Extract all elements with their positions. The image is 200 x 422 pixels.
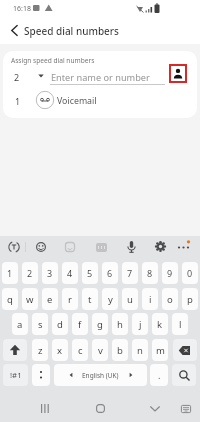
- staticText: 4: [67, 267, 73, 279]
- staticText: Speed dial numbers: [24, 24, 119, 38]
- staticText: .: [158, 369, 161, 381]
- staticText: u: [127, 293, 133, 306]
- button[interactable]: k: [152, 313, 168, 335]
- staticText: Enter name or number: [51, 71, 150, 84]
- staticText: i: [149, 293, 152, 306]
- staticText: 6: [107, 267, 113, 279]
- button[interactable]: !#1: [3, 364, 28, 386]
- button[interactable]: [86, 400, 116, 422]
- staticText: b: [117, 344, 123, 357]
- button[interactable]: a: [12, 313, 28, 335]
- staticText: p: [187, 293, 193, 306]
- staticText: s: [38, 318, 43, 331]
- button[interactable]: t: [82, 288, 98, 310]
- staticText: j: [139, 318, 142, 331]
- staticText: 5: [87, 267, 93, 279]
- staticText: !#1: [10, 370, 22, 381]
- staticText: y: [108, 293, 113, 306]
- button[interactable]: w: [22, 288, 38, 310]
- button[interactable]: h: [112, 313, 128, 335]
- staticText: z: [38, 344, 43, 357]
- button[interactable]: [3, 64, 197, 88]
- button[interactable]: r: [62, 288, 78, 310]
- button[interactable]: j: [132, 313, 148, 335]
- button[interactable]: 5: [82, 262, 98, 284]
- staticText: 2: [27, 267, 33, 279]
- button[interactable]: [3, 88, 197, 118]
- staticText: 16:18: [13, 4, 31, 14]
- staticText: c: [78, 344, 83, 357]
- button[interactable]: 2: [22, 262, 38, 284]
- staticText: 3: [47, 267, 53, 279]
- button[interactable]: [30, 400, 60, 422]
- button[interactable]: .: [150, 364, 168, 386]
- staticText: 9: [167, 267, 173, 279]
- button[interactable]: [169, 64, 187, 83]
- button[interactable]: u: [122, 288, 138, 310]
- button[interactable]: o: [162, 288, 178, 310]
- button[interactable]: q: [2, 288, 18, 310]
- staticText: 7: [127, 267, 133, 279]
- staticText: v: [98, 344, 103, 357]
- staticText: 2: [14, 71, 20, 83]
- button[interactable]: [176, 400, 200, 422]
- staticText: r: [68, 293, 72, 306]
- button[interactable]: 0: [182, 262, 198, 284]
- button[interactable]: p: [182, 288, 198, 310]
- staticText: 1: [15, 95, 21, 107]
- button[interactable]: s: [32, 313, 48, 335]
- staticText: e: [47, 293, 53, 306]
- button[interactable]: i: [142, 288, 158, 310]
- button[interactable]: f: [72, 313, 88, 335]
- staticText: Voicemail: [57, 95, 97, 107]
- staticText: n: [137, 344, 143, 357]
- staticText: h: [117, 318, 123, 331]
- button[interactable]: 4: [62, 262, 78, 284]
- button[interactable]: e: [42, 288, 58, 310]
- button[interactable]: [0, 15, 44, 44]
- staticText: 1: [7, 267, 13, 279]
- button[interactable]: b: [112, 339, 128, 361]
- staticText: g: [97, 318, 103, 331]
- button[interactable]: [173, 339, 197, 361]
- staticText: q: [7, 293, 13, 306]
- button[interactable]: z: [32, 339, 48, 361]
- button[interactable]: y: [102, 288, 118, 310]
- button[interactable]: 9: [162, 262, 178, 284]
- staticText: d: [57, 318, 63, 331]
- staticText: m: [156, 344, 165, 357]
- button[interactable]: 7: [122, 262, 138, 284]
- staticText: t: [88, 293, 92, 306]
- button[interactable]: g: [92, 313, 108, 335]
- staticText: Assign speed dial numbers: [11, 56, 95, 65]
- staticText: English (UK): [82, 371, 119, 380]
- staticText: l: [179, 318, 182, 331]
- button[interactable]: [140, 400, 170, 422]
- button[interactable]: l: [172, 313, 188, 335]
- staticText: x: [57, 344, 63, 357]
- button[interactable]: 3: [42, 262, 58, 284]
- button[interactable]: [32, 364, 50, 386]
- staticText: f: [78, 318, 82, 331]
- staticText: 8: [147, 267, 153, 279]
- staticText: k: [157, 318, 163, 331]
- button[interactable]: [172, 364, 196, 386]
- staticText: w: [26, 293, 34, 306]
- button[interactable]: 6: [102, 262, 118, 284]
- button[interactable]: 1: [2, 262, 18, 284]
- button[interactable]: m: [152, 339, 168, 361]
- staticText: 0: [187, 267, 193, 279]
- button[interactable]: v: [92, 339, 108, 361]
- button[interactable]: [3, 339, 27, 361]
- button[interactable]: d: [52, 313, 68, 335]
- button[interactable]: 8: [142, 262, 158, 284]
- button[interactable]: English (UK): [54, 364, 147, 386]
- staticText: o: [167, 293, 173, 306]
- button[interactable]: n: [132, 339, 148, 361]
- button[interactable]: c: [72, 339, 88, 361]
- button[interactable]: x: [52, 339, 68, 361]
- staticText: a: [17, 318, 23, 331]
